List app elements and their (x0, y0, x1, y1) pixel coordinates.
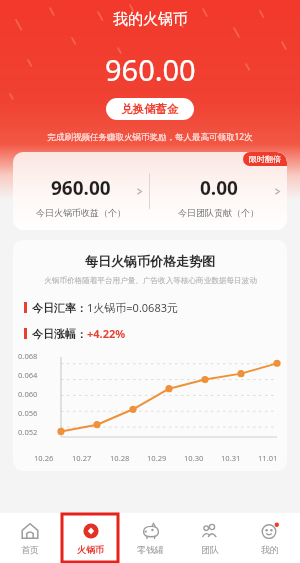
staticText: 我的 (261, 544, 279, 555)
button[interactable]: 零钱罐 (120, 513, 180, 563)
staticText: 0.056 (18, 408, 38, 418)
staticText: 我的火锅币 (113, 10, 188, 29)
staticText: 零钱罐 (137, 544, 164, 555)
staticText: 火锅币 (77, 544, 104, 555)
staticText: 10.27 (72, 453, 92, 463)
staticText: 10.26 (34, 453, 54, 463)
staticText: 火锅币价格随着平台用户量、广告收入等核心商业数据每日波动 (44, 276, 257, 286)
button[interactable]: 限时翻倍 (243, 152, 287, 166)
staticText: +4.22% (87, 326, 126, 341)
staticText: 0.00 (200, 175, 238, 201)
staticText: 今日涨幅： (32, 327, 87, 341)
staticText: 1火锅币=0.0683元 (87, 300, 178, 315)
button[interactable]: 团队 (180, 513, 240, 563)
button[interactable]: 我的 (240, 513, 300, 563)
button[interactable]: 0.00 (150, 152, 287, 230)
staticText: 960.00 (51, 175, 111, 201)
staticText: 0.052 (18, 427, 38, 437)
staticText: 10.28 (110, 453, 130, 463)
staticText: 10.30 (184, 453, 204, 463)
staticText: 团队 (201, 544, 219, 555)
button[interactable]: 火锅币 (60, 513, 120, 563)
staticText: 11.01 (258, 453, 278, 463)
button[interactable]: 兑换储蓄金 (106, 98, 194, 120)
staticText: 今日火锅币收益（个） (36, 207, 126, 218)
staticText: 完成刷视频任务赚取火锅币奖励，每人最高可领取12次 (47, 131, 253, 143)
button[interactable]: 首页 (0, 513, 60, 563)
staticText: 10.29 (147, 453, 167, 463)
staticText: 每日火锅币价格走势图 (85, 253, 215, 269)
staticText: 0.068 (18, 351, 38, 361)
staticText: 首页 (21, 544, 39, 555)
staticText: 兑换储蓄金 (121, 102, 179, 116)
staticText: 0.060 (18, 389, 38, 399)
staticText: 960.00 (105, 50, 196, 89)
staticText: 今日团队贡献（个） (178, 207, 259, 218)
staticText: 今日汇率： (32, 301, 87, 315)
button[interactable]: 960.00 (13, 152, 149, 230)
staticText: 0.064 (18, 370, 38, 380)
staticText: 限时翻倍 (249, 154, 281, 164)
staticText: 10.31 (221, 453, 241, 463)
